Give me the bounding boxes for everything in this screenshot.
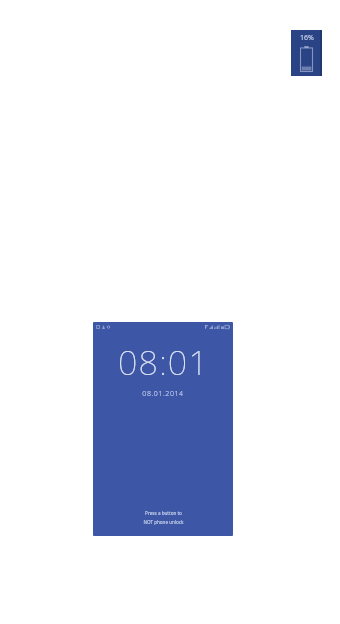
button[interactable]: Battery 16 percent	[291, 30, 322, 76]
staticText: Press a button to	[145, 510, 182, 516]
staticText: 08:01	[118, 339, 209, 385]
staticText: 08.01.2014	[142, 389, 184, 399]
staticText: NOT phone unlock	[143, 519, 184, 525]
button[interactable]: 08:01	[93, 322, 233, 536]
staticText: 16%	[300, 33, 314, 43]
